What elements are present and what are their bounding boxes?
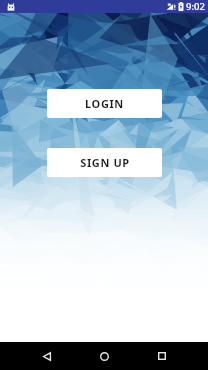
button[interactable]: Back bbox=[33, 342, 61, 370]
button[interactable]: LOGIN bbox=[47, 89, 162, 118]
staticText: 9:02 bbox=[186, 0, 205, 13]
button[interactable]: SIGN UP bbox=[47, 148, 162, 177]
button[interactable]: Recent apps bbox=[148, 342, 176, 370]
staticText: SIGN UP bbox=[80, 155, 130, 170]
staticText: LOGIN bbox=[85, 96, 124, 111]
button[interactable]: Home bbox=[90, 342, 118, 370]
